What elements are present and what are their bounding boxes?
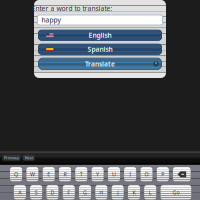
staticText: Spanish xyxy=(87,45,112,54)
button[interactable]: F xyxy=(63,185,75,200)
staticText: Enter a word to translate: xyxy=(31,4,112,13)
button[interactable]: U xyxy=(108,167,120,182)
button[interactable]: P xyxy=(157,167,169,182)
button[interactable]: R xyxy=(59,167,71,182)
button[interactable]: O xyxy=(140,167,153,182)
button[interactable]: Y xyxy=(91,167,104,182)
staticText: K xyxy=(132,189,135,196)
staticText: O xyxy=(144,171,148,178)
button[interactable]: H xyxy=(95,185,107,200)
button[interactable]: G xyxy=(79,185,91,200)
button[interactable]: W xyxy=(26,167,39,182)
staticText: J xyxy=(117,189,118,196)
staticText: I xyxy=(129,171,131,178)
button[interactable]: Delete xyxy=(173,167,191,182)
button[interactable]: English xyxy=(38,30,161,40)
staticText: Next xyxy=(25,155,33,160)
button[interactable]: L xyxy=(144,185,156,200)
staticText: Previous xyxy=(4,155,19,160)
staticText: Y xyxy=(96,171,99,178)
button[interactable]: Previous xyxy=(2,155,20,161)
staticText: P xyxy=(161,171,164,178)
staticText: R xyxy=(63,171,66,178)
staticText: Q xyxy=(14,171,18,178)
button[interactable]: K xyxy=(128,185,140,200)
button[interactable]: Go xyxy=(160,185,191,200)
button[interactable]: J xyxy=(111,185,124,200)
staticText: Translate xyxy=(85,59,115,68)
staticText: U xyxy=(112,171,116,178)
staticText: T xyxy=(80,171,83,178)
staticText: F xyxy=(67,189,70,196)
button[interactable]: Q xyxy=(10,167,22,182)
staticText: A xyxy=(18,189,21,196)
staticText: E xyxy=(47,171,50,178)
staticText: D xyxy=(50,189,54,196)
button[interactable]: D xyxy=(46,185,59,200)
staticText: L xyxy=(149,189,152,196)
staticText: Go xyxy=(172,189,179,196)
staticText: G xyxy=(83,189,87,196)
staticText: S xyxy=(35,189,38,196)
staticText: W xyxy=(30,171,35,178)
staticText: H xyxy=(99,189,103,196)
staticText: happy xyxy=(41,16,60,24)
button[interactable]: I xyxy=(124,167,136,182)
button[interactable]: A xyxy=(14,185,26,200)
staticText: English xyxy=(88,31,111,40)
button[interactable]: Spanish xyxy=(38,44,161,54)
button[interactable]: Translate xyxy=(38,58,161,70)
button[interactable]: Next xyxy=(23,155,35,161)
button[interactable]: T xyxy=(75,167,87,182)
button[interactable]: E xyxy=(43,167,55,182)
button[interactable]: S xyxy=(30,185,42,200)
